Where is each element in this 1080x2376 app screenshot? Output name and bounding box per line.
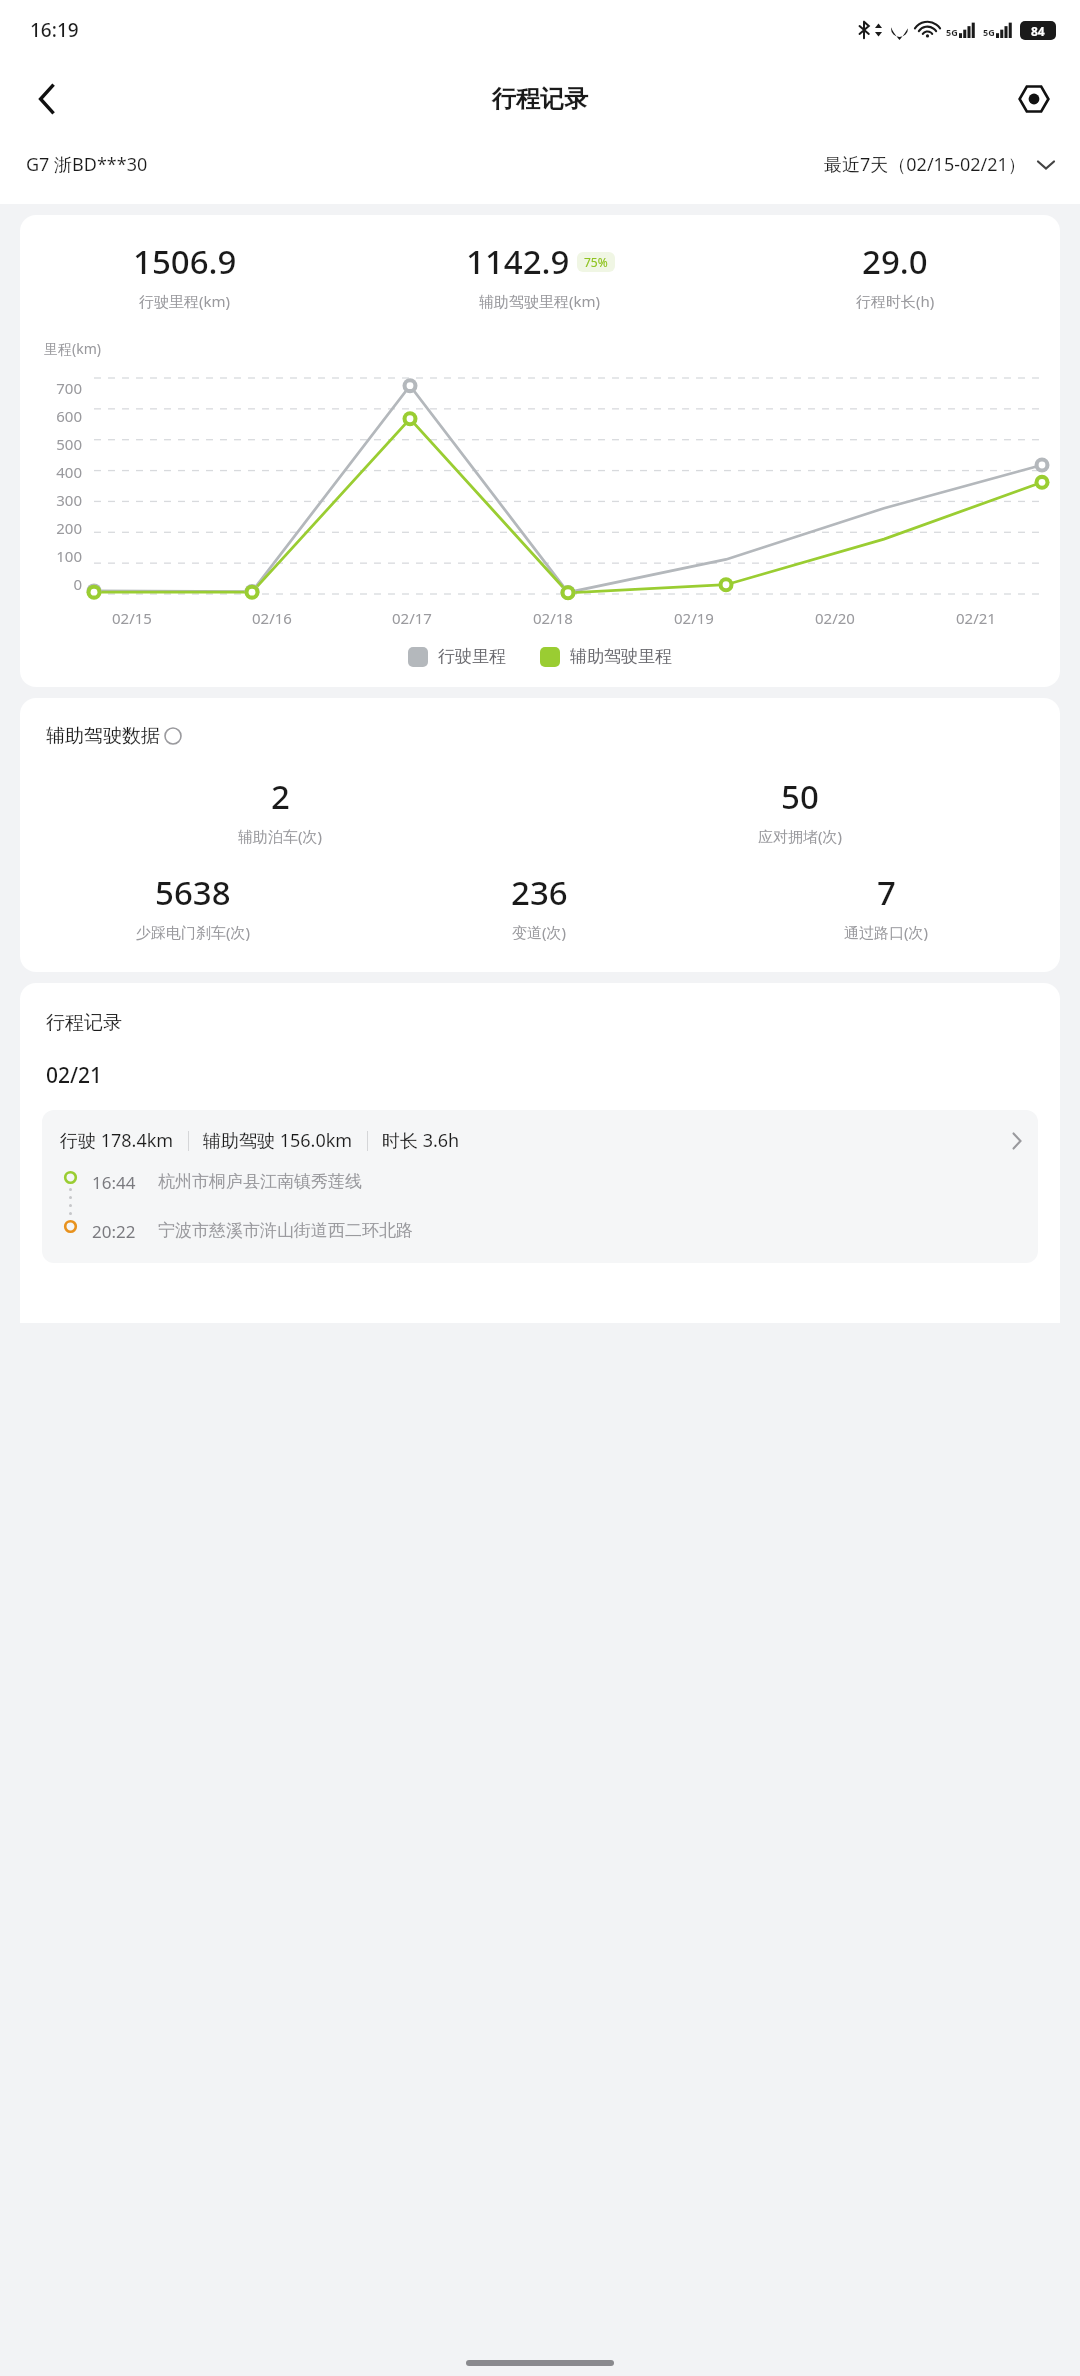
staticText: 5G (983, 26, 995, 38)
staticText: 02/15 (112, 608, 152, 628)
button[interactable]: Settings (1008, 73, 1060, 125)
staticText: 700 (56, 378, 82, 398)
staticText: 变道(次) (512, 922, 567, 942)
staticText: 500 (56, 434, 82, 454)
staticText: 02/17 (392, 608, 432, 628)
staticText: 里程(km) (44, 339, 101, 358)
staticText: 应对拥堵(次) (758, 826, 843, 846)
staticText: 辅助驾驶数据 (46, 724, 160, 748)
staticText: 行驶 178.4km (60, 1128, 174, 1153)
staticText: 200 (56, 518, 82, 538)
staticText: 02/20 (815, 608, 855, 628)
staticText: 20:22 (92, 1220, 136, 1243)
staticText: 辅助泊车(次) (238, 826, 323, 846)
staticText: 辅助驾驶里程 (570, 646, 672, 667)
staticText: 300 (56, 490, 82, 510)
staticText: 宁波市慈溪市浒山街道西二环北路 (158, 1220, 413, 1241)
staticText: 行程记录 (492, 84, 588, 114)
staticText: 1142.9 (466, 239, 570, 284)
button[interactable]: Back (20, 73, 72, 125)
staticText: 236 (511, 870, 568, 915)
staticText: 1506.9 (133, 239, 237, 284)
staticText: G7 浙BD***30 (26, 152, 148, 177)
staticText: 7 (877, 870, 896, 915)
staticText: 辅助驾驶 156.0km (203, 1128, 353, 1153)
staticText: 行程时长(h) (856, 291, 935, 311)
staticText: 0 (73, 574, 82, 594)
staticText: 5638 (155, 870, 231, 915)
button[interactable]: 辅助驾驶数据 (46, 724, 182, 748)
staticText: 16:19 (30, 17, 79, 43)
staticText: 辅助驾驶里程(km) (479, 291, 601, 311)
staticText: 行程记录 (46, 1011, 122, 1035)
staticText: 02/21 (956, 608, 996, 628)
other: Info (164, 727, 182, 745)
staticText: 5G (946, 26, 958, 38)
staticText: 2 (271, 774, 290, 819)
staticText: 行驶里程 (438, 646, 506, 667)
staticText: 50 (781, 774, 819, 819)
button[interactable]: 行驶 178.4km (42, 1110, 1038, 1263)
staticText: 600 (56, 406, 82, 426)
staticText: 02/18 (533, 608, 573, 628)
staticText: 时长 3.6h (382, 1128, 460, 1153)
staticText: 最近7天（02/15-02/21） (824, 152, 1026, 177)
staticText: 行驶里程(km) (139, 291, 231, 311)
staticText: 02/19 (674, 608, 714, 628)
staticText: 通过路口(次) (844, 922, 929, 942)
staticText: 29.0 (862, 239, 928, 284)
staticText: 02/21 (46, 1061, 103, 1090)
staticText: 84 (1031, 23, 1045, 39)
staticText: 16:44 (92, 1171, 136, 1194)
staticText: 02/16 (252, 608, 292, 628)
staticText: 75% (584, 254, 608, 270)
staticText: 少踩电门刹车(次) (136, 922, 251, 942)
button[interactable]: 最近7天（02/15-02/21） (824, 152, 1054, 177)
button[interactable]: G7 浙BD***30 (26, 152, 148, 177)
staticText: 杭州市桐庐县江南镇秀莲线 (158, 1171, 362, 1192)
staticText: 100 (56, 546, 82, 566)
staticText: 400 (56, 462, 82, 482)
